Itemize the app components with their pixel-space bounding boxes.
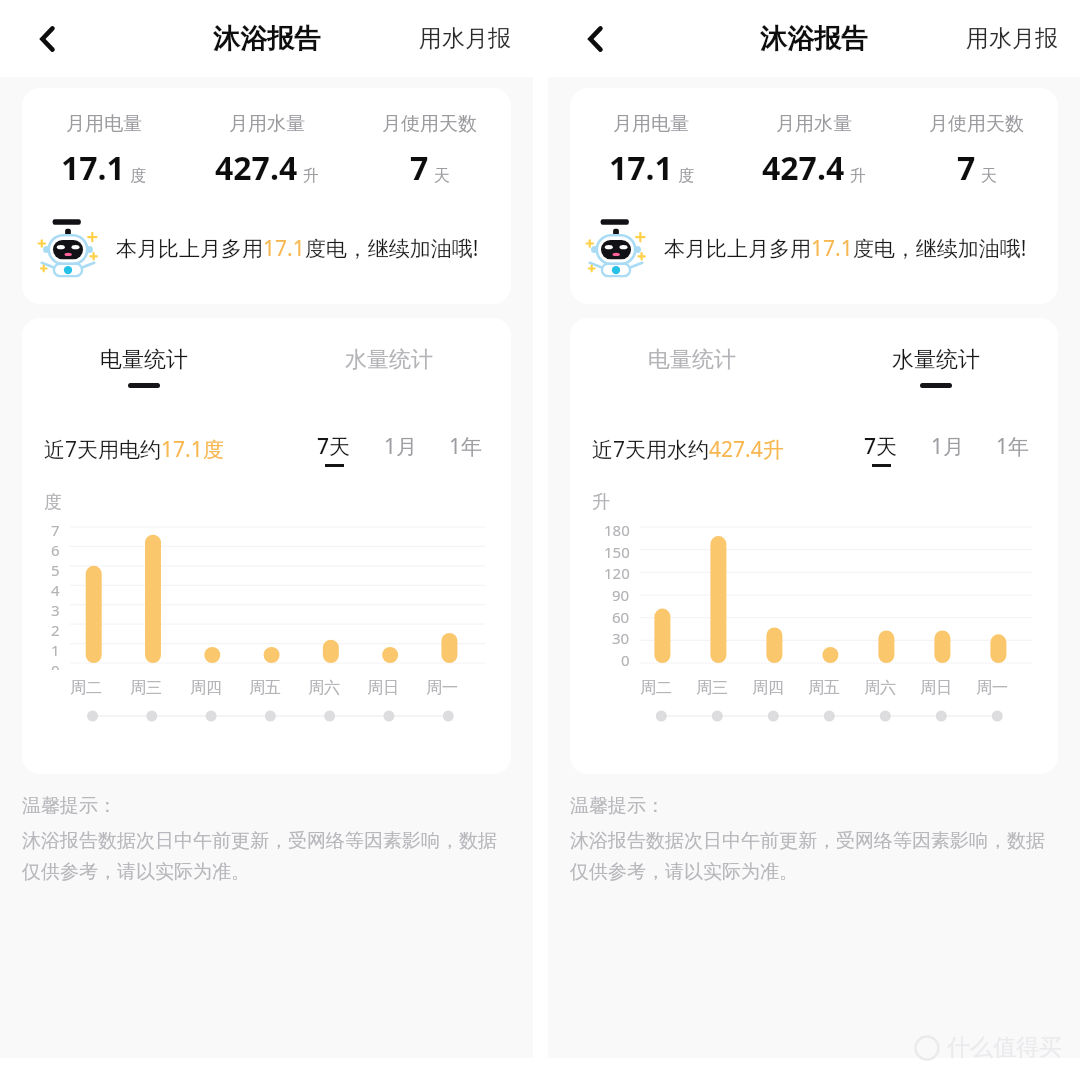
staticText: 温馨提示： [570,794,665,818]
staticText: 度 [44,491,62,514]
staticText: 周四 [190,678,222,698]
staticText: 月使用天数 [929,112,1024,136]
button[interactable]: 用水月报 [966,24,1058,53]
staticText: 度 [678,166,694,186]
staticText: 升 [303,166,319,186]
staticText: 什么值得买 [947,1033,1062,1062]
staticText: 周三 [696,678,728,698]
staticText: 月用水量 [776,112,852,136]
staticText: 180 [604,520,630,540]
staticText: 30 [612,628,630,648]
staticText: 周二 [70,678,102,698]
staticText: 1年 [449,432,483,461]
staticText: 温馨提示： [22,794,117,818]
staticText: 周二 [640,678,672,698]
staticText: 周六 [864,678,896,698]
staticText: 周一 [426,678,458,698]
staticText: 周日 [920,678,952,698]
staticText: 用水月报 [419,24,511,53]
button[interactable]: 水量统计 [814,346,1058,388]
staticText: 3 [51,600,60,620]
staticText: 水量统计 [345,346,433,374]
staticText: 电量统计 [100,346,188,374]
staticText: 120 [604,563,630,583]
staticText: 月用电量 [66,112,142,136]
staticText: 0 [51,660,60,670]
button[interactable]: 1月 [931,432,965,467]
staticText: 升 [850,166,866,186]
button[interactable]: 1月 [384,432,418,467]
staticText: 月用电量 [613,112,689,136]
staticText: 水量统计 [892,346,980,374]
staticText: 周三 [130,678,162,698]
button[interactable]: 电量统计 [570,346,814,388]
staticText: 7天 [317,432,351,461]
button[interactable]: 1年 [996,432,1030,467]
staticText: 天 [434,166,450,186]
staticText: 近7天用水约427.4升 [592,435,784,464]
button[interactable]: 7天 [864,432,898,467]
button[interactable]: Back [22,13,74,65]
button[interactable]: Back [570,13,622,65]
staticText: 7 [410,146,429,190]
staticText: 6 [51,540,60,560]
staticText: 17.1 [61,146,125,190]
button[interactable]: 1年 [449,432,483,467]
staticText: 升 [592,491,610,514]
button[interactable]: 用水月报 [419,24,511,53]
staticText: 4 [51,580,60,600]
staticText: 1月 [384,432,418,461]
staticText: 1 [51,640,60,660]
staticText: 周四 [752,678,784,698]
button[interactable]: 水量统计 [266,346,511,388]
staticText: 1月 [931,432,965,461]
staticText: 用水月报 [966,24,1058,53]
staticText: 周一 [976,678,1008,698]
staticText: 本月比上月多用17.1度电，继续加油哦! [664,234,1027,263]
staticText: 0 [621,650,630,670]
staticText: 周五 [249,678,281,698]
staticText: 7天 [864,432,898,461]
staticText: 沐浴报告 [760,22,868,56]
staticText: 沐浴报告数据次日中午前更新，受网络等因素影响，数据仅供参考，请以实际为准。 [570,829,1054,884]
staticText: 60 [612,607,630,627]
staticText: 沐浴报告 [213,22,321,56]
staticText: 1年 [996,432,1030,461]
staticText: 90 [612,585,630,605]
staticText: 7 [957,146,976,190]
staticText: 近7天用电约17.1度 [44,435,224,464]
staticText: 沐浴报告数据次日中午前更新，受网络等因素影响，数据仅供参考，请以实际为准。 [22,829,507,884]
staticText: 周五 [808,678,840,698]
button[interactable]: 7天 [317,432,351,467]
staticText: 427.4 [762,146,845,190]
staticText: 电量统计 [648,346,736,374]
staticText: 天 [981,166,997,186]
staticText: 度 [130,166,146,186]
staticText: 7 [51,520,60,540]
staticText: 本月比上月多用17.1度电，继续加油哦! [116,234,479,263]
staticText: 周日 [367,678,399,698]
button[interactable]: 电量统计 [22,346,266,388]
staticText: 5 [51,560,60,580]
staticText: 2 [51,620,60,640]
staticText: 月用水量 [229,112,305,136]
staticText: 周六 [308,678,340,698]
staticText: 月使用天数 [382,112,477,136]
staticText: 150 [604,542,630,562]
staticText: 427.4 [215,146,298,190]
staticText: 17.1 [609,146,673,190]
